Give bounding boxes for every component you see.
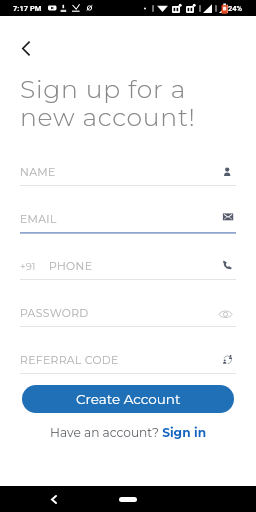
button[interactable]: REFERRAL CODE — [20, 347, 236, 373]
button[interactable]: EMAIL — [20, 206, 236, 232]
staticText: PASSWORD — [20, 307, 89, 320]
staticText: 7:17 PM — [13, 4, 42, 13]
button[interactable]: NAME — [20, 159, 236, 185]
staticText: EMAIL — [20, 213, 57, 226]
staticText: Sign up for a new account! — [20, 74, 196, 132]
button[interactable]: Back — [12, 35, 39, 62]
staticText: PHONE — [49, 260, 93, 273]
staticText: REFERRAL CODE — [20, 354, 119, 367]
staticText: NAME — [20, 166, 56, 179]
staticText: Create Account — [76, 391, 181, 407]
button[interactable]: +91 — [20, 253, 236, 279]
button[interactable]: PASSWORD — [20, 300, 236, 326]
other: Back — [52, 496, 56, 503]
staticText: 24% — [228, 4, 243, 13]
button[interactable]: Have an account? Sign in — [50, 425, 207, 440]
staticText: +91 — [20, 260, 36, 272]
button[interactable]: Create Account — [22, 385, 234, 413]
